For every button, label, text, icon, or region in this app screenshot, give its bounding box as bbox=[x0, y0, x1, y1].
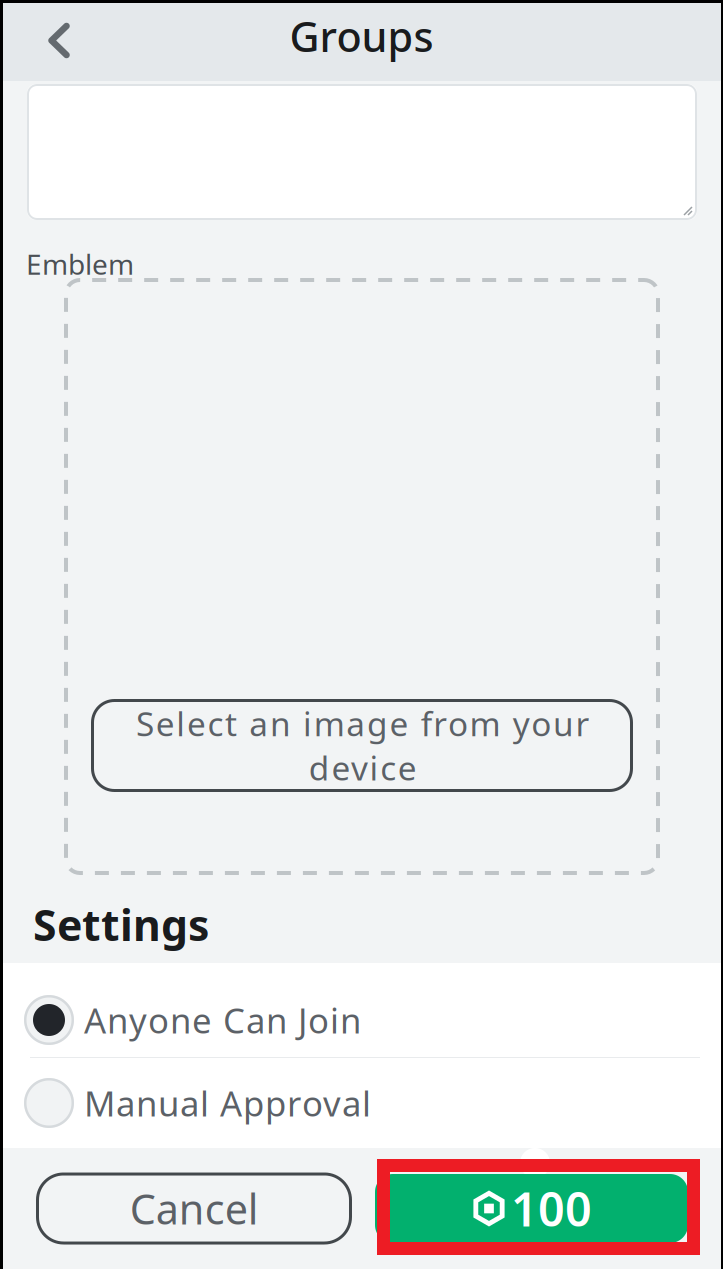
staticText: Cancel bbox=[129, 1181, 258, 1236]
button[interactable]: 100 bbox=[375, 1174, 688, 1243]
staticText: Manual Approval bbox=[84, 1080, 371, 1126]
button[interactable]: Anyone Can Join bbox=[0, 963, 723, 1057]
staticText: Anyone Can Join bbox=[84, 997, 361, 1043]
staticText: Settings bbox=[33, 896, 209, 953]
button[interactable]: Back bbox=[35, 16, 83, 64]
staticText: Groups bbox=[289, 9, 433, 63]
staticText: Emblem bbox=[26, 245, 134, 283]
button[interactable]: Cancel bbox=[36, 1172, 352, 1244]
button[interactable]: Manual Approval bbox=[0, 1058, 723, 1148]
staticText: 100 bbox=[511, 1177, 592, 1239]
button[interactable]: Select an image from your device bbox=[91, 699, 633, 792]
staticText: Select an image from your device bbox=[135, 701, 589, 790]
